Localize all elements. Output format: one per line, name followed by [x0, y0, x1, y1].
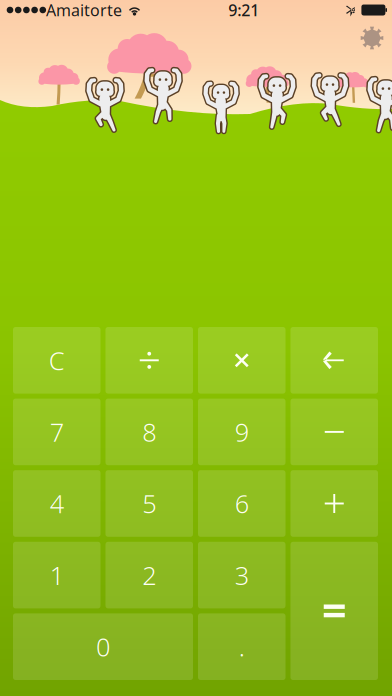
button[interactable]: 8	[105, 399, 193, 465]
button[interactable]: 6	[198, 470, 285, 537]
staticText: 3	[235, 558, 249, 592]
button[interactable]: Settings	[358, 24, 386, 52]
button[interactable]: 2	[105, 542, 193, 608]
staticText: 9	[235, 415, 249, 449]
button[interactable]: Backspace	[290, 327, 378, 394]
button[interactable]: 1	[13, 542, 100, 608]
button[interactable]: 4	[13, 470, 100, 537]
button[interactable]: Divide	[105, 327, 193, 394]
staticText: 4	[50, 487, 64, 520]
staticText: 5	[142, 487, 156, 520]
button[interactable]: 7	[13, 399, 100, 465]
staticText: 8	[142, 415, 156, 449]
staticText: C	[49, 343, 65, 377]
button[interactable]: 5	[105, 470, 193, 537]
button[interactable]: .	[198, 613, 285, 680]
button[interactable]: Equals	[290, 542, 378, 680]
staticText: 1	[50, 558, 64, 592]
button[interactable]: Clear	[13, 327, 100, 394]
button[interactable]: 0	[13, 613, 193, 680]
staticText: 9:21	[228, 0, 259, 21]
button[interactable]: Multiply	[198, 327, 285, 394]
staticText: 6	[235, 487, 249, 520]
button[interactable]: Plus	[290, 470, 378, 537]
button[interactable]: 9	[198, 399, 285, 465]
button[interactable]: Minus	[290, 399, 378, 465]
staticText: Amaitorte	[46, 0, 122, 21]
staticText: .	[239, 630, 245, 663]
button[interactable]: 3	[198, 542, 285, 608]
staticText: 2	[142, 558, 156, 592]
staticText: 7	[50, 415, 64, 449]
staticText: 0	[96, 630, 110, 663]
